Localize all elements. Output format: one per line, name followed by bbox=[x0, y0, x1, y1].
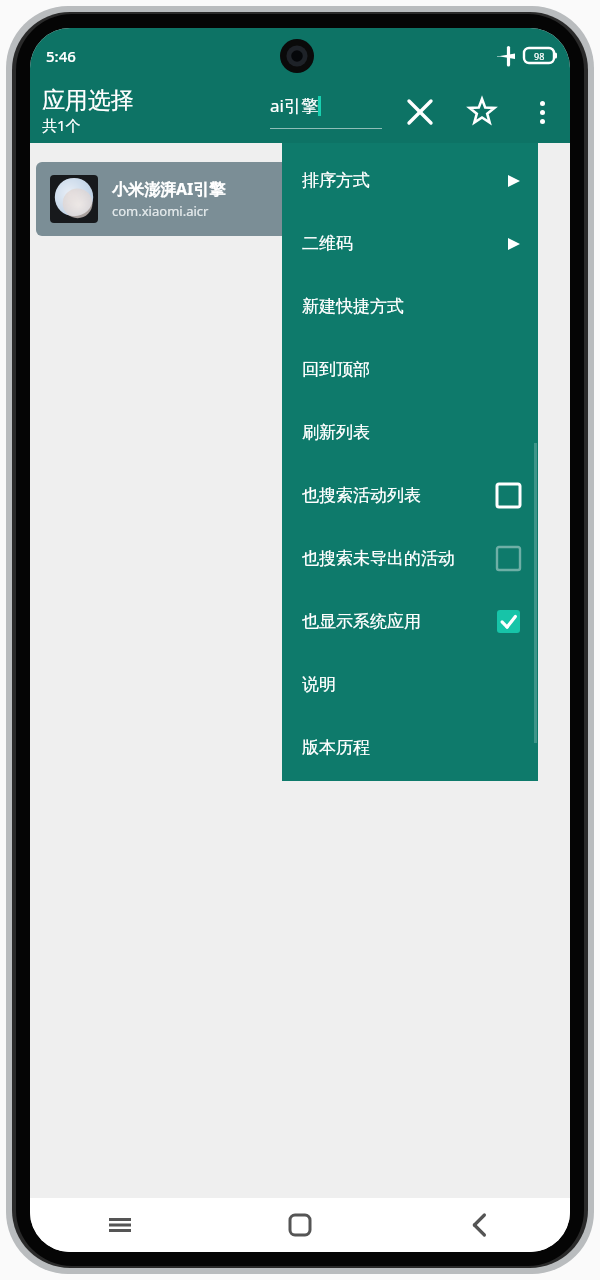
button[interactable]: ai引擎 bbox=[270, 94, 382, 129]
staticText: 排序方式 bbox=[302, 170, 370, 191]
staticText: com.xiaomi.aicr bbox=[112, 202, 209, 220]
staticText: 也搜索未导出的活动 bbox=[302, 548, 455, 569]
staticText: 回到顶部 bbox=[302, 359, 370, 380]
button[interactable]: Home bbox=[210, 1198, 390, 1252]
staticText: 刷新列表 bbox=[302, 422, 370, 443]
button[interactable]: 也显示系统应用 bbox=[282, 590, 538, 653]
staticText: 二维码 bbox=[302, 233, 353, 254]
staticText: 也搜索活动列表 bbox=[302, 485, 421, 506]
staticText: 也显示系统应用 bbox=[302, 611, 421, 632]
staticText: 98 bbox=[534, 50, 545, 62]
button[interactable]: Favorite bbox=[460, 90, 504, 134]
staticText: 新建快捷方式 bbox=[302, 296, 404, 317]
button[interactable]: 也搜索活动列表 bbox=[282, 464, 538, 527]
button[interactable]: 也搜索未导出的活动 bbox=[282, 527, 538, 590]
staticText: 应用选择 bbox=[42, 86, 134, 115]
button[interactable]: Back bbox=[390, 1198, 570, 1252]
button[interactable]: 二维码 bbox=[282, 212, 538, 275]
staticText: 小米澎湃AI引擎 bbox=[112, 178, 226, 200]
button[interactable]: 说明 bbox=[282, 653, 538, 716]
button[interactable]: 刷新列表 bbox=[282, 401, 538, 464]
button[interactable]: 小米澎湃AI引擎 bbox=[36, 162, 538, 236]
staticText: ai引擎 bbox=[270, 94, 318, 117]
staticText: 共1个 bbox=[42, 115, 81, 135]
button[interactable]: More options bbox=[520, 90, 564, 134]
button[interactable]: 回到顶部 bbox=[282, 338, 538, 401]
staticText: 5:46 bbox=[46, 46, 76, 66]
staticText: 版本历程 bbox=[302, 737, 370, 758]
staticText: 说明 bbox=[302, 674, 336, 695]
button[interactable]: Clear search bbox=[398, 90, 442, 134]
button[interactable]: 新建快捷方式 bbox=[282, 275, 538, 338]
button[interactable]: 排序方式 bbox=[282, 149, 538, 212]
button[interactable]: Recent apps bbox=[30, 1198, 210, 1252]
button[interactable]: 版本历程 bbox=[282, 716, 538, 779]
